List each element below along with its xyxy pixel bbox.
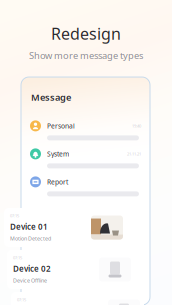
staticText: 07:15: [10, 213, 19, 218]
staticText: Report: [47, 177, 68, 186]
staticText: Device Offline: [13, 277, 47, 284]
staticText: 19:40: [132, 123, 141, 128]
button[interactable]: 07:15: [11, 292, 144, 305]
staticText: Device 01: [10, 221, 48, 232]
staticText: Motion Detected: [10, 235, 51, 242]
button[interactable]: Report: [30, 176, 141, 196]
staticText: 21-11-21: [127, 151, 141, 156]
button[interactable]: 07:15: [4, 208, 127, 247]
staticText: Message: [31, 91, 71, 103]
staticText: 07:15: [17, 297, 26, 302]
staticText: 07:15: [13, 255, 22, 260]
button[interactable]: System: [30, 148, 141, 168]
staticText: Show more message types: [29, 49, 143, 62]
staticText: Personal: [47, 121, 75, 130]
button[interactable]: Personal: [30, 120, 141, 140]
button[interactable]: 07:15: [7, 250, 135, 289]
staticText: Redesign: [51, 23, 121, 44]
staticText: System: [47, 149, 69, 158]
staticText: Device 02: [13, 263, 51, 274]
